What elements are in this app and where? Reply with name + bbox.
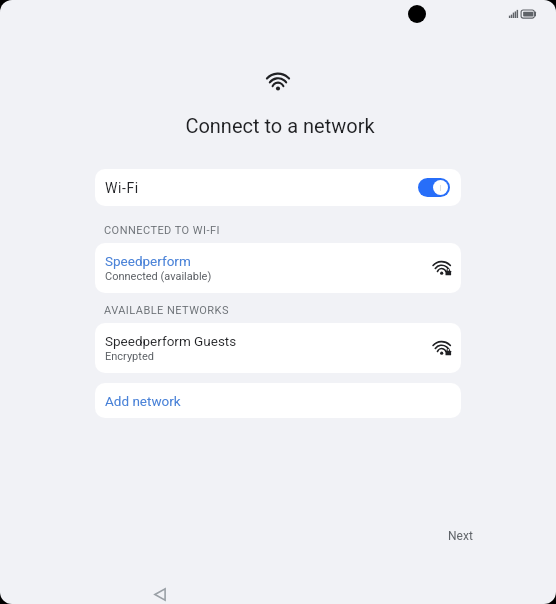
staticText: Speedperform	[105, 253, 191, 269]
button[interactable]: Next	[438, 522, 483, 550]
staticText: AVAILABLE NETWORKS	[104, 304, 229, 317]
button[interactable]: Add network	[95, 383, 461, 418]
button[interactable]: Speedperform Guests	[95, 323, 461, 373]
staticText: Connect to a network	[2, 114, 556, 137]
staticText: Add network	[105, 393, 181, 409]
staticText: Connected (available)	[105, 270, 212, 283]
staticText: Next	[448, 529, 473, 543]
button[interactable]: Back	[148, 583, 171, 604]
staticText: Wi-Fi	[105, 180, 139, 196]
button[interactable]: Wi-Fi	[95, 169, 461, 206]
staticText: CONNECTED TO WI-FI	[104, 224, 220, 237]
button[interactable]: Speedperform	[95, 243, 461, 293]
staticText: Speedperform Guests	[105, 333, 237, 349]
button[interactable]: Wi-Fi on	[418, 178, 450, 197]
staticText: Encrypted	[105, 350, 154, 363]
